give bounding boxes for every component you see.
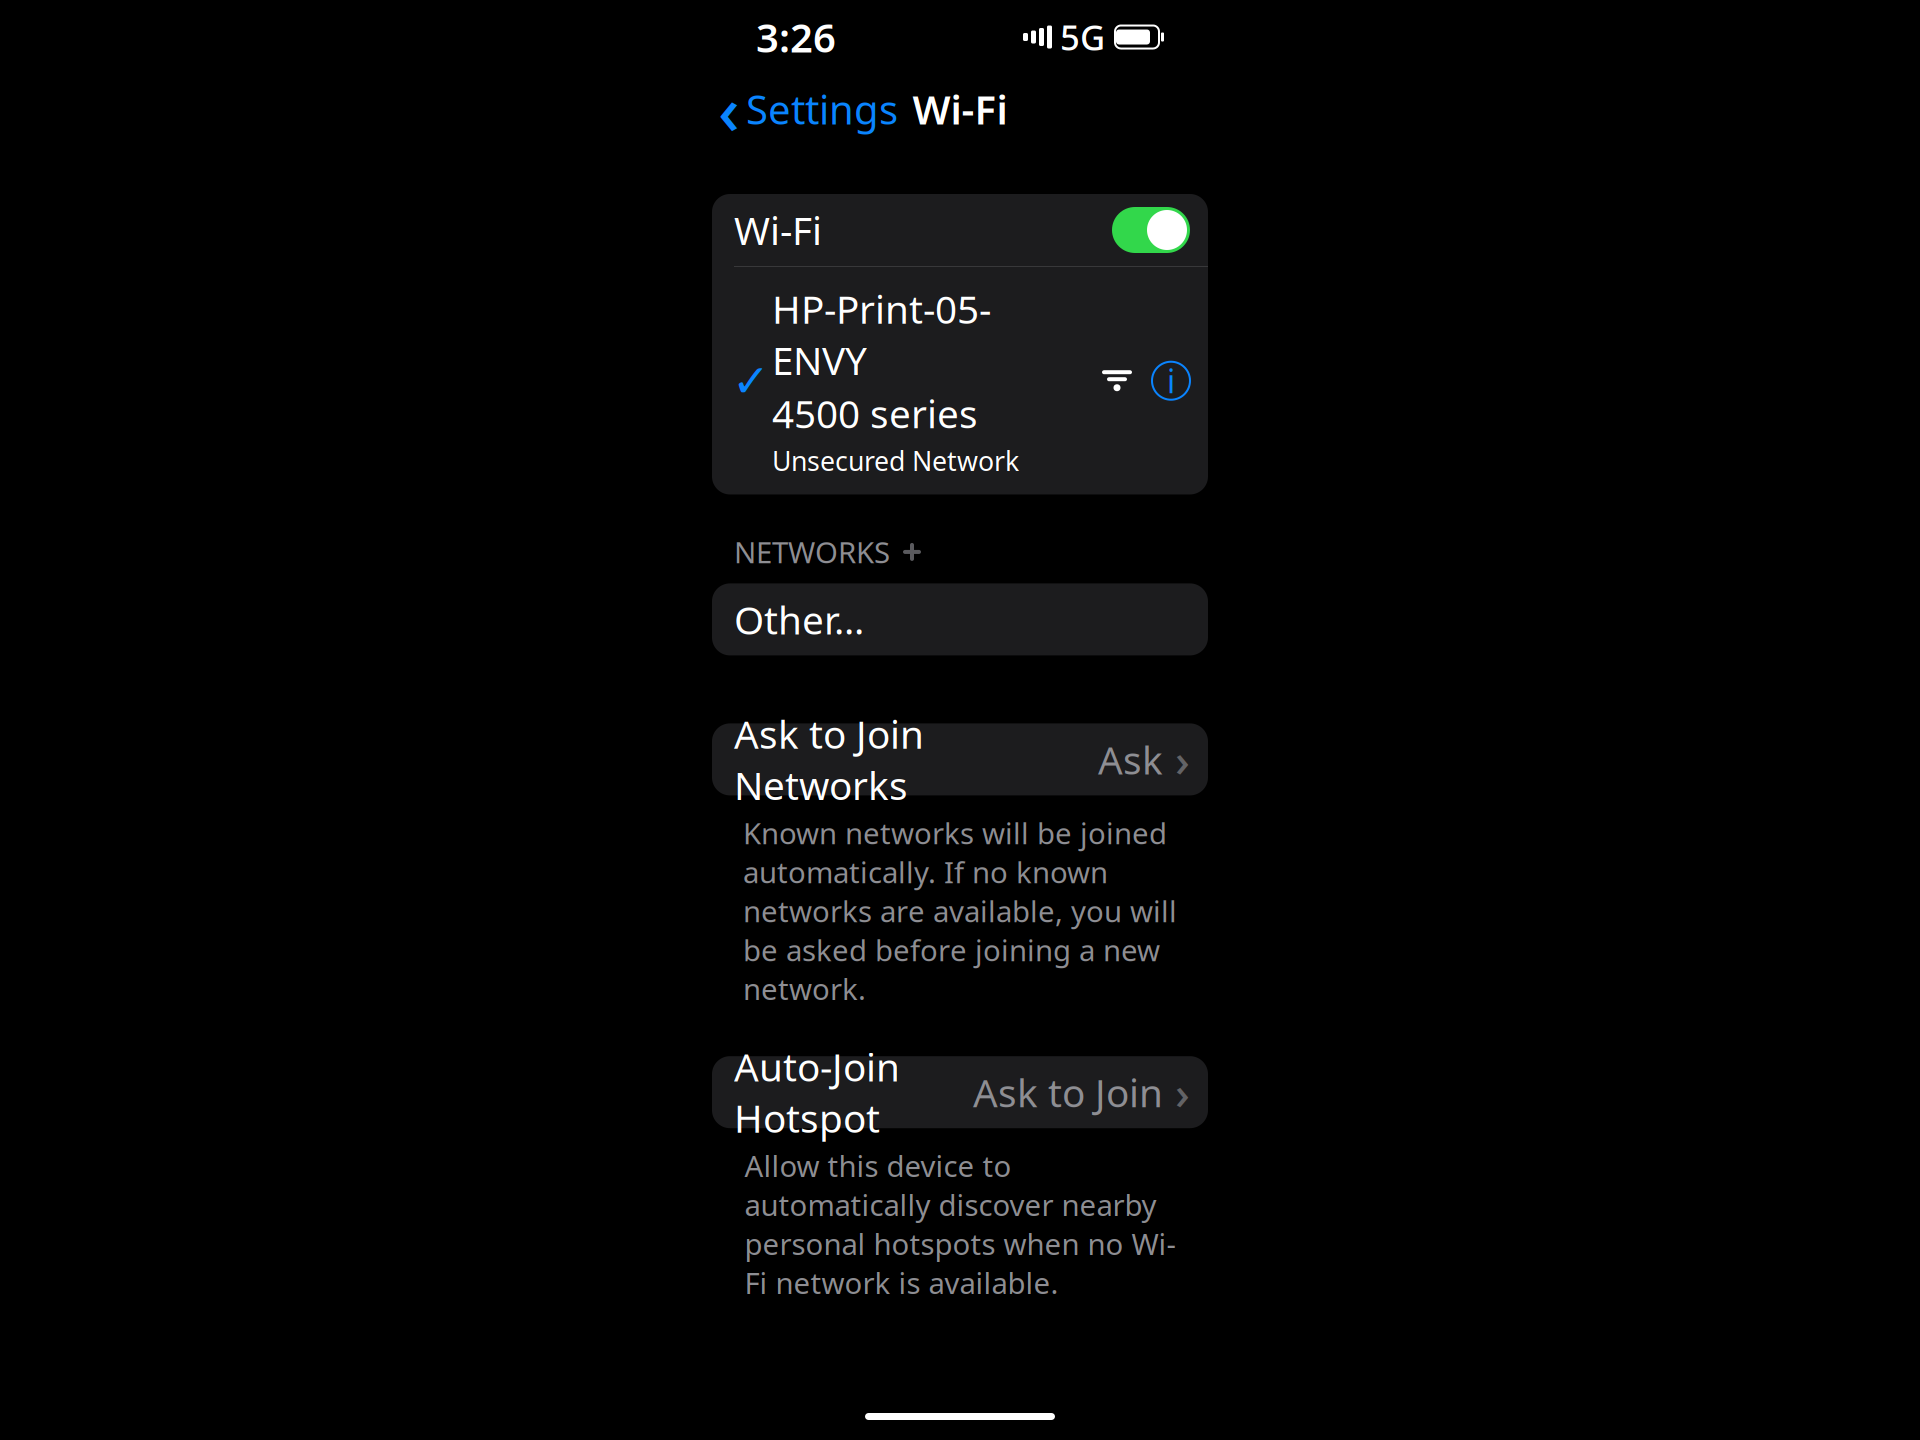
- staticText: ✓: [732, 355, 770, 406]
- staticText: 3:26: [756, 10, 836, 63]
- staticText: HP-Print-05-ENVY: [772, 283, 991, 386]
- staticText: 5G: [1060, 14, 1105, 60]
- staticText: Wi-Fi: [912, 82, 1007, 135]
- button[interactable]: ✓: [712, 267, 1208, 494]
- staticText: Wi-Fi: [734, 204, 822, 256]
- button[interactable]: Auto-Join Hotspot: [712, 1056, 1208, 1128]
- staticText: Known networks will be joined automatica…: [743, 813, 1177, 1008]
- staticText: NETWORKS: [734, 532, 890, 571]
- staticText: Unsecured Network: [772, 443, 1019, 478]
- staticText: ‹: [718, 65, 740, 153]
- staticText: Settings: [746, 82, 898, 135]
- staticText: Allow this device to automatically disco…: [744, 1146, 1175, 1302]
- staticText: Auto-Join Hotspot: [734, 1041, 900, 1143]
- staticText: Ask to Join Networks: [734, 708, 924, 811]
- staticText: 4500 series: [772, 388, 978, 439]
- staticText: Other...: [734, 594, 864, 645]
- staticText: i: [1167, 359, 1175, 402]
- button[interactable]: Other...: [712, 583, 1208, 655]
- staticText: ›: [1175, 729, 1190, 789]
- button[interactable]: Ask to Join Networks: [712, 723, 1208, 795]
- button[interactable]: ‹: [714, 59, 902, 159]
- staticText: Ask to Join: [973, 1066, 1163, 1118]
- staticText: Ask: [1098, 734, 1163, 785]
- button[interactable]: Wi-Fi: [1112, 207, 1190, 253]
- staticText: ›: [1175, 1062, 1190, 1122]
